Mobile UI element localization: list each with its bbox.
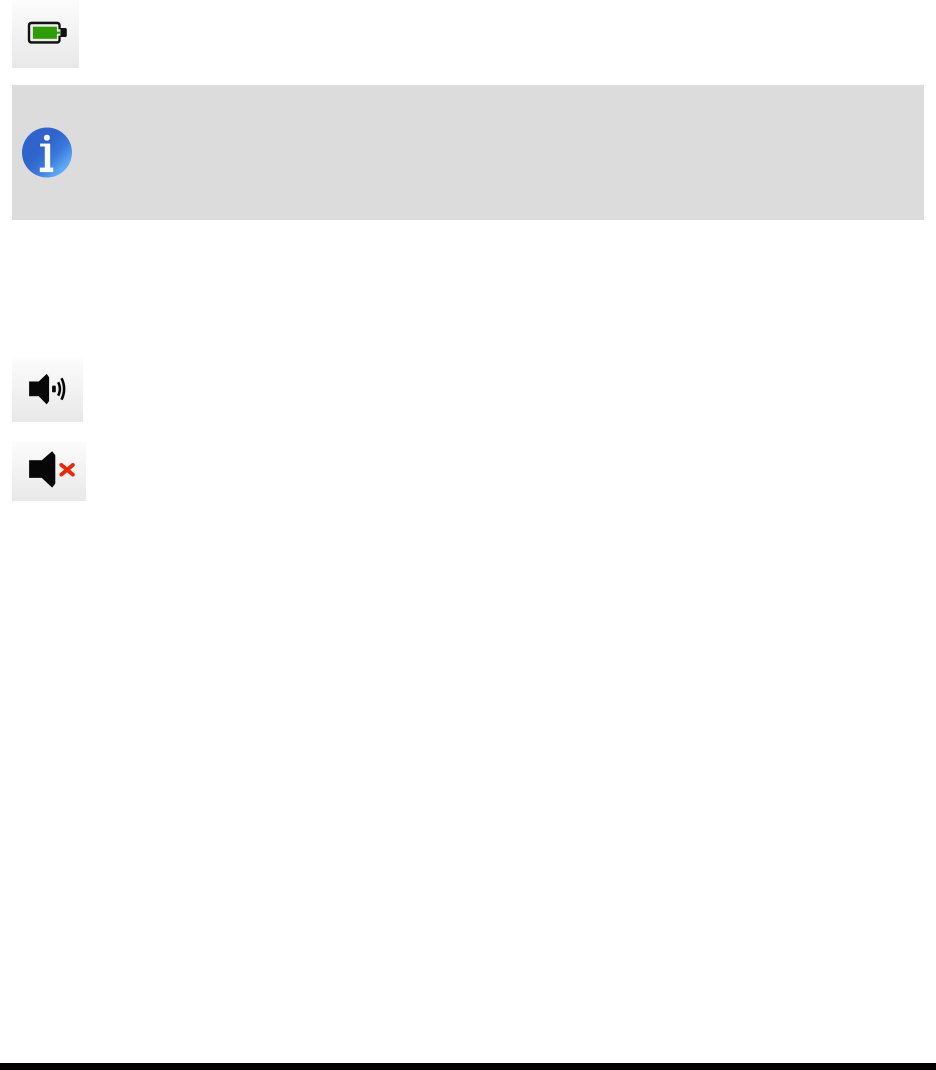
button[interactable]: Mute xyxy=(12,441,86,501)
button[interactable]: Volume on xyxy=(12,358,83,422)
button[interactable]: Battery xyxy=(12,0,79,68)
